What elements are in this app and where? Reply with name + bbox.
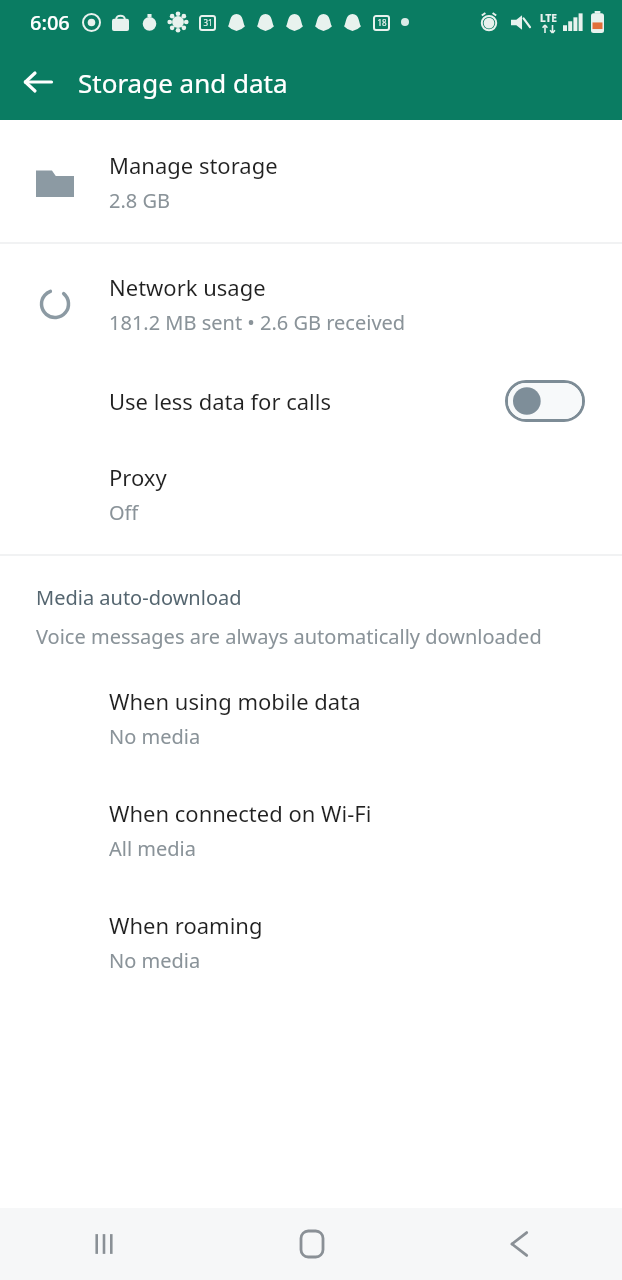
staticText: Storage and data: [78, 65, 288, 100]
staticText: 18: [377, 17, 387, 28]
staticText: Off: [109, 499, 139, 526]
button[interactable]: When using mobile data: [0, 686, 622, 750]
button[interactable]: Use less data for calls: [0, 358, 622, 444]
button[interactable]: Back: [415, 1208, 622, 1280]
button[interactable]: Home: [208, 1208, 415, 1280]
button[interactable]: Manage storage: [0, 120, 622, 242]
staticText: Voice messages are always automatically …: [36, 623, 542, 650]
staticText: No media: [109, 947, 201, 974]
staticText: LTE: [540, 11, 557, 25]
staticText: All media: [109, 835, 196, 862]
button[interactable]: Network usage: [0, 244, 622, 358]
button[interactable]: Back: [12, 56, 64, 108]
staticText: 31: [203, 17, 213, 28]
button[interactable]: When roaming: [0, 910, 622, 974]
staticText: When connected on Wi-Fi: [109, 798, 372, 828]
staticText: 6:06: [30, 9, 70, 36]
staticText: Network usage: [109, 272, 266, 302]
button[interactable]: When connected on Wi-Fi: [0, 798, 622, 862]
button[interactable]: Proxy: [0, 444, 622, 554]
staticText: 2.8 GB: [109, 187, 170, 214]
staticText: Proxy: [109, 462, 167, 492]
staticText: Manage storage: [109, 150, 278, 180]
staticText: Use less data for calls: [109, 386, 505, 416]
staticText: Media auto-download: [36, 584, 242, 611]
staticText: When using mobile data: [109, 686, 361, 716]
button[interactable]: Recents: [0, 1208, 208, 1280]
staticText: When roaming: [109, 910, 263, 940]
staticText: No media: [109, 723, 201, 750]
staticText: 181.2 MB sent • 2.6 GB received: [109, 309, 406, 336]
